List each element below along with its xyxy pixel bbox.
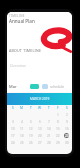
button[interactable]: 11 bbox=[18, 125, 25, 132]
staticText: T bbox=[48, 106, 50, 110]
button[interactable]: 27 bbox=[36, 139, 43, 146]
button[interactable]: 26 bbox=[27, 139, 34, 146]
button[interactable]: 12 bbox=[27, 125, 34, 132]
staticText: 6 bbox=[39, 120, 41, 124]
button[interactable]: 14 bbox=[45, 125, 52, 132]
button[interactable]: 28 bbox=[45, 139, 52, 146]
staticText: 1 bbox=[57, 113, 59, 117]
button[interactable]: 15 bbox=[54, 125, 61, 132]
staticText: TIMELINE bbox=[9, 14, 25, 18]
button[interactable]: 2 bbox=[63, 111, 70, 118]
staticText: 9 bbox=[66, 120, 68, 124]
button[interactable]: 18 bbox=[18, 132, 25, 139]
staticText: 11 bbox=[20, 127, 24, 131]
staticText: F bbox=[57, 106, 59, 110]
button[interactable]: 29 bbox=[54, 139, 61, 146]
staticText: 23 bbox=[65, 134, 69, 138]
staticText: 30 bbox=[65, 141, 69, 145]
button[interactable]: 9 bbox=[63, 118, 70, 125]
staticText: Overview bbox=[10, 63, 26, 68]
button[interactable]: 8 bbox=[54, 118, 61, 125]
staticText: 8 bbox=[57, 120, 59, 124]
staticText: Annual Plan bbox=[9, 18, 35, 24]
staticText: S bbox=[66, 106, 68, 110]
staticText: 18 bbox=[20, 134, 24, 138]
button[interactable]: 6 bbox=[36, 118, 43, 125]
staticText: 29 bbox=[56, 141, 60, 145]
staticText: 28 bbox=[47, 141, 51, 145]
staticText: 4 bbox=[21, 120, 23, 124]
staticText: 15 bbox=[56, 127, 60, 131]
button[interactable]: 4 bbox=[18, 118, 25, 125]
staticText: 2 bbox=[66, 113, 68, 117]
staticText: 24 bbox=[11, 141, 15, 145]
staticText: W bbox=[38, 106, 41, 110]
staticText: 12 bbox=[29, 127, 33, 131]
staticText: T bbox=[30, 106, 32, 110]
button[interactable]: 10 bbox=[9, 125, 16, 132]
staticText: schedule bbox=[50, 84, 65, 89]
staticText: 22 bbox=[56, 134, 60, 138]
button[interactable]: 13 bbox=[36, 125, 43, 132]
staticText: 17 bbox=[11, 134, 15, 138]
staticText: 14 bbox=[47, 127, 51, 131]
staticText: 20 bbox=[38, 134, 42, 138]
staticText: 19 bbox=[29, 134, 33, 138]
staticText: Mar bbox=[9, 84, 17, 89]
button[interactable]: 17 bbox=[9, 132, 16, 139]
button[interactable]: 23 bbox=[63, 132, 70, 139]
button[interactable] bbox=[42, 84, 48, 89]
button[interactable]: 21 bbox=[45, 132, 52, 139]
button[interactable]: 1 bbox=[54, 111, 61, 118]
staticText: 13 bbox=[38, 127, 42, 131]
button[interactable]: 5 bbox=[27, 118, 34, 125]
button[interactable] bbox=[30, 84, 39, 89]
staticText: 5 bbox=[30, 120, 32, 124]
staticText: 26 bbox=[29, 141, 33, 145]
button[interactable]: 22 bbox=[54, 132, 61, 139]
button[interactable]: 19 bbox=[27, 132, 34, 139]
staticText: 27 bbox=[38, 141, 42, 145]
staticText: 7 bbox=[48, 120, 50, 124]
button[interactable]: 24 bbox=[9, 139, 16, 146]
staticText: ABOUT TIMELINE bbox=[9, 48, 42, 53]
staticText: MARCH 2019 bbox=[30, 97, 50, 101]
staticText: 21 bbox=[47, 134, 51, 138]
staticText: 16 bbox=[65, 127, 69, 131]
staticText: M bbox=[20, 106, 23, 110]
staticText: 25 bbox=[20, 141, 24, 145]
button[interactable]: 25 bbox=[18, 139, 25, 146]
button[interactable]: 7 bbox=[45, 118, 52, 125]
staticText: 3 bbox=[12, 120, 14, 124]
button[interactable]: 16 bbox=[63, 125, 70, 132]
staticText: 10 bbox=[11, 127, 15, 131]
button[interactable]: 30 bbox=[63, 139, 70, 146]
button[interactable]: 20 bbox=[36, 132, 43, 139]
staticText: S bbox=[12, 106, 14, 110]
button[interactable]: 3 bbox=[9, 118, 16, 125]
